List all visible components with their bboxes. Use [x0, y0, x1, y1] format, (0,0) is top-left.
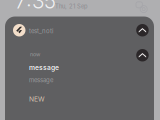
staticText: message — [29, 76, 53, 84]
staticText: 7:35 — [15, 0, 56, 13]
staticText: now — [30, 51, 40, 57]
staticText: Thu, 21 Sep — [55, 3, 88, 10]
staticText: test_noti — [29, 27, 53, 35]
button[interactable]: Collapse notification — [136, 49, 149, 61]
staticText: message — [29, 63, 59, 72]
staticText: NEW — [29, 95, 45, 103]
button[interactable]: Collapse notification — [136, 24, 149, 36]
